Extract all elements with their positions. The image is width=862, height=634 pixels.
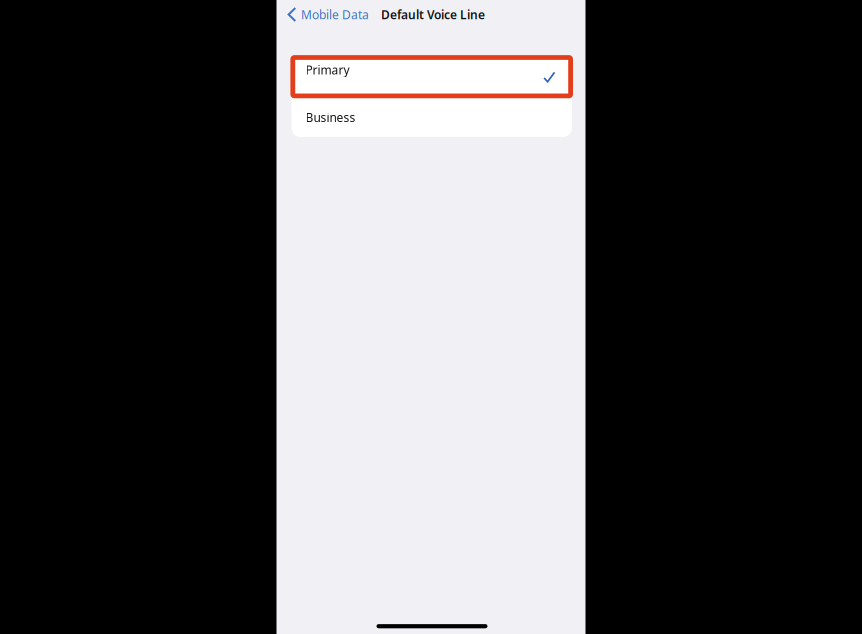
staticText: Primary bbox=[305, 62, 349, 78]
button[interactable]: Primary bbox=[291, 55, 572, 95]
staticText: Business bbox=[305, 109, 355, 125]
button[interactable]: Business bbox=[291, 95, 572, 137]
button[interactable]: Back to Mobile Data bbox=[276, 1, 372, 27]
staticText: Mobile Data bbox=[301, 6, 369, 22]
staticText: Default Voice Line bbox=[381, 6, 485, 22]
